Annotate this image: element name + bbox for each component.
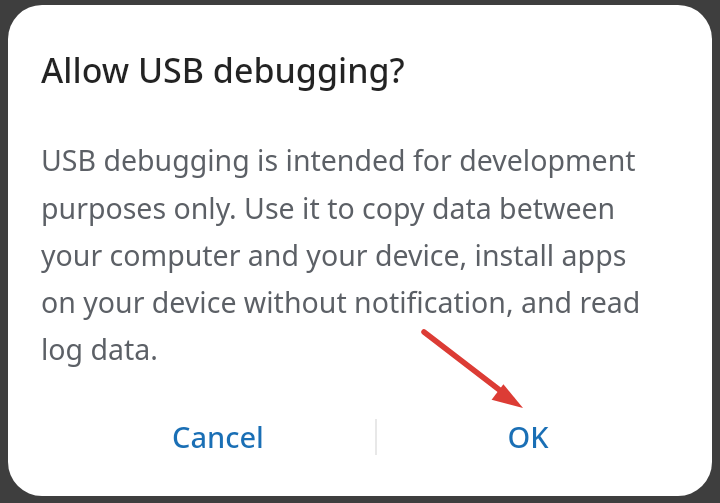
staticText: USB debugging is intended for developmen… — [41, 141, 666, 368]
other: Arrow pointing to OK — [416, 325, 536, 417]
staticText: OK — [507, 417, 549, 456]
button[interactable]: Cancel — [128, 401, 308, 471]
staticText: Allow USB debugging? — [41, 47, 405, 93]
button[interactable]: OK — [438, 401, 618, 471]
staticText: Cancel — [172, 417, 264, 456]
